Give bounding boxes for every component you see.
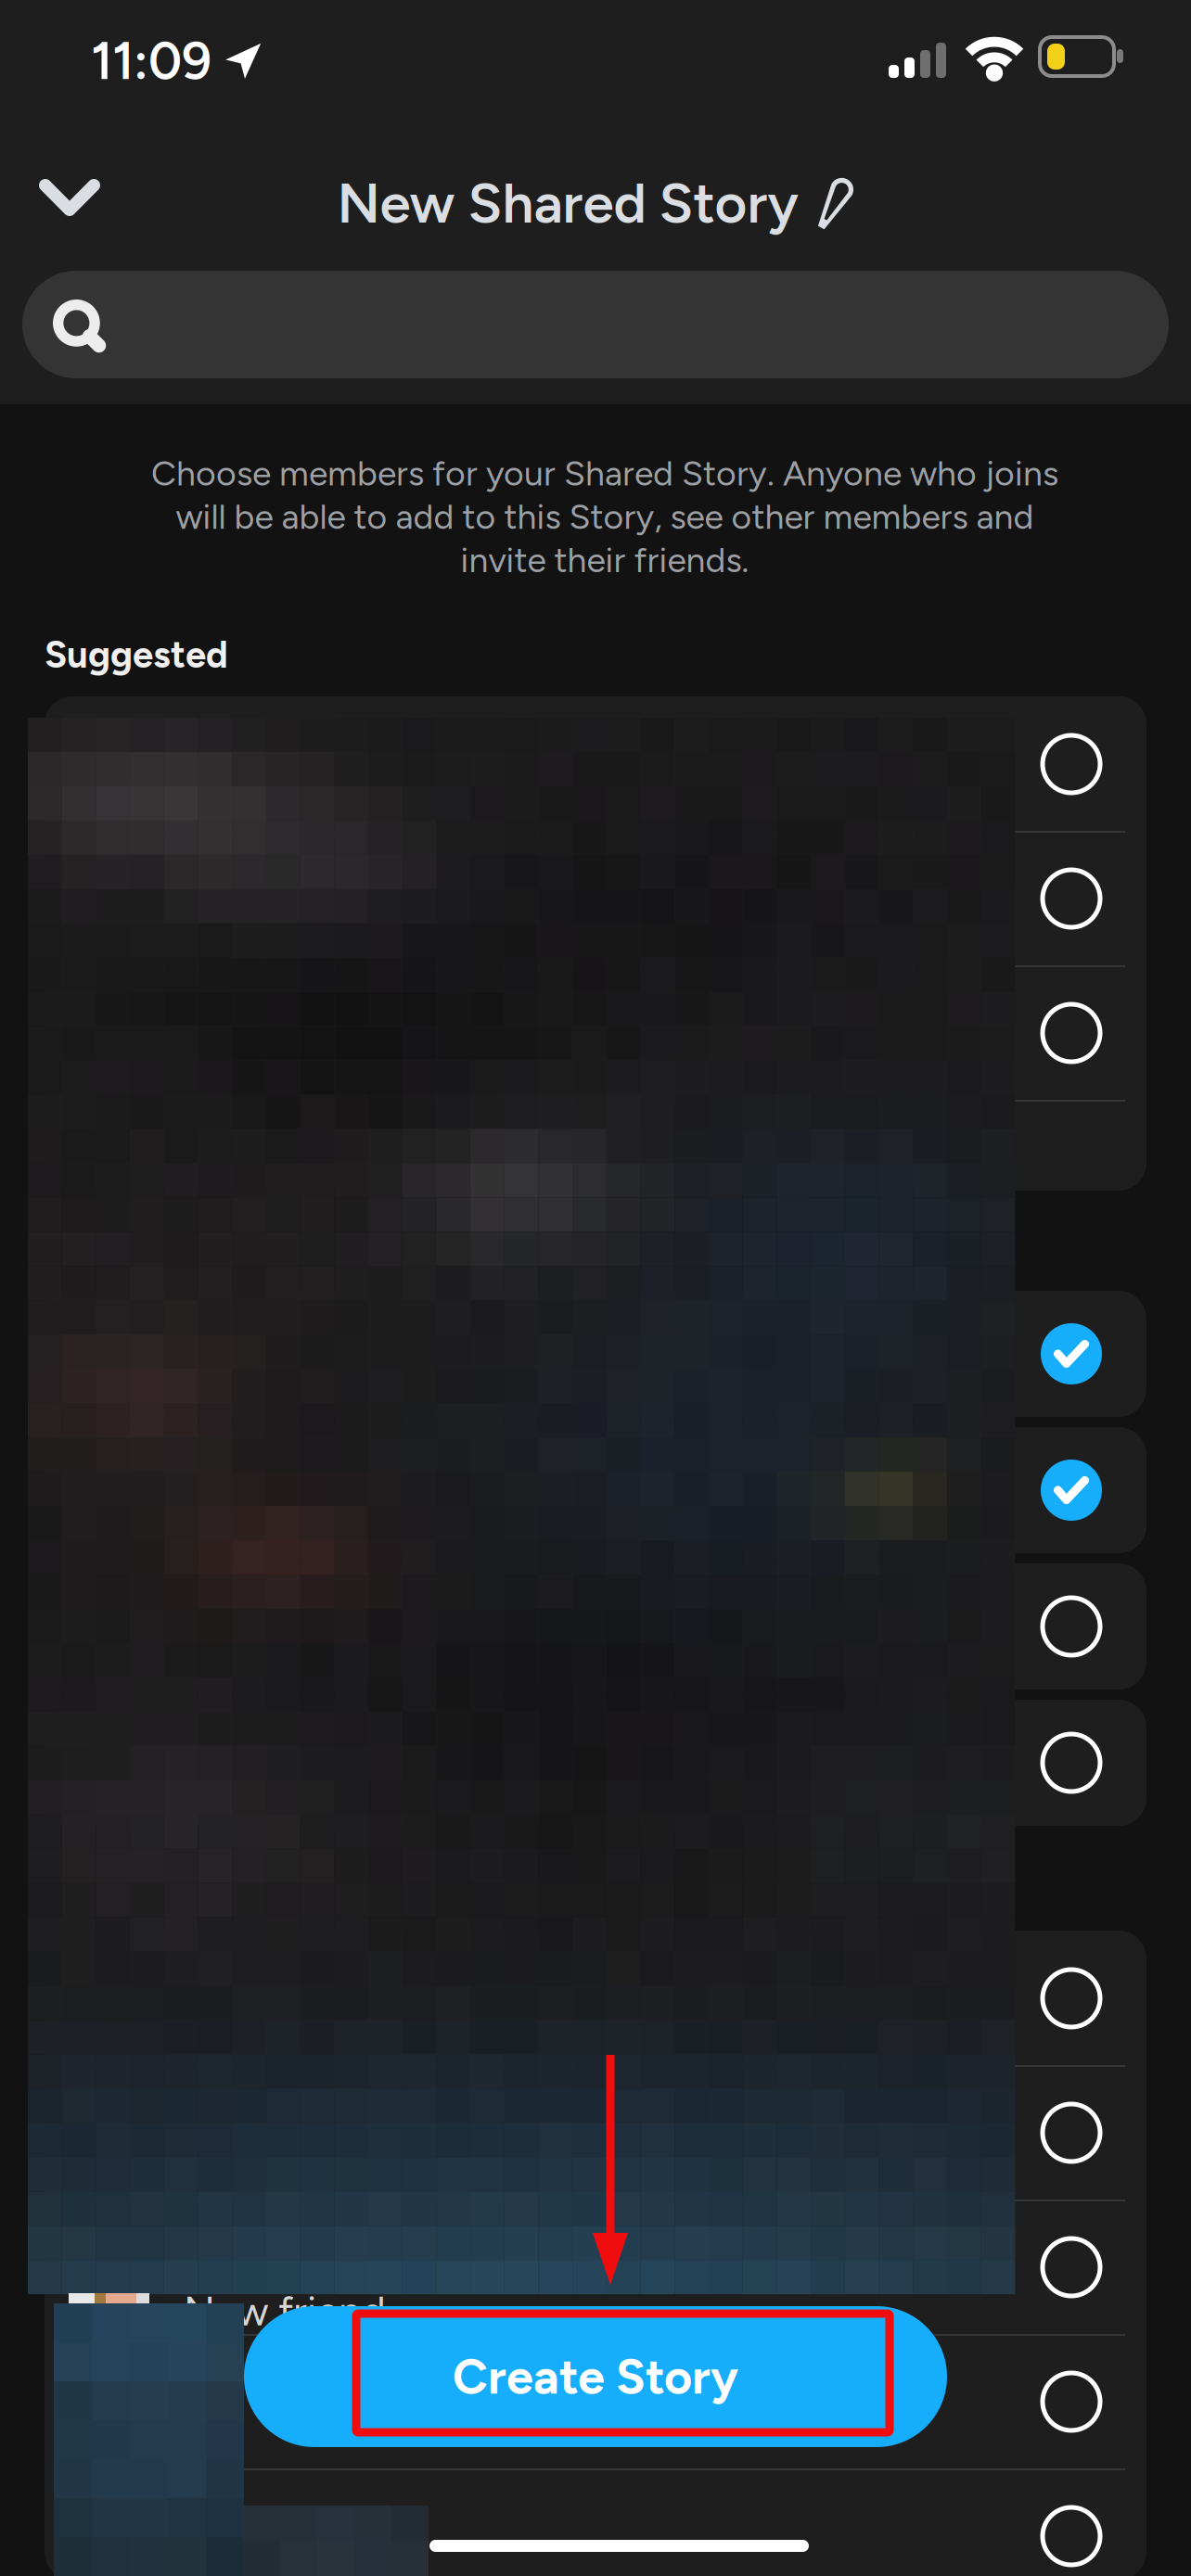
button[interactable]: Search (22, 271, 1169, 378)
staticText: Choose members for your Shared Story. An… (151, 453, 1058, 494)
button[interactable]: Select member (45, 831, 1146, 965)
button[interactable]: Select member (45, 1700, 1146, 1826)
staticText: Suggested (45, 632, 228, 677)
button[interactable]: Select member (45, 1291, 1146, 1417)
button[interactable]: Suggested (45, 632, 228, 677)
button[interactable]: Select member (45, 1931, 1146, 2065)
button[interactable]: Select member (45, 2200, 1146, 2334)
staticText: invite their friends. (461, 539, 749, 581)
button[interactable]: Select member (45, 965, 1146, 1100)
button[interactable]: Close (0, 137, 139, 258)
button[interactable]: Select member (45, 2468, 1146, 2576)
staticText: 11:09 (91, 30, 211, 92)
staticText: will be able to add to this Story, see o… (176, 496, 1034, 537)
staticText: New Shared Story (337, 170, 798, 236)
button[interactable]: Select member (45, 2334, 1146, 2468)
button[interactable]: Select member (45, 1563, 1146, 1690)
button[interactable]: Select member (45, 2065, 1146, 2200)
button[interactable]: Select member (45, 696, 1146, 831)
button[interactable]: Select member (45, 1427, 1146, 1553)
staticText: Create Story (453, 2348, 738, 2406)
button[interactable]: Create Story (244, 2306, 947, 2447)
staticText: New friend (184, 2287, 386, 2336)
